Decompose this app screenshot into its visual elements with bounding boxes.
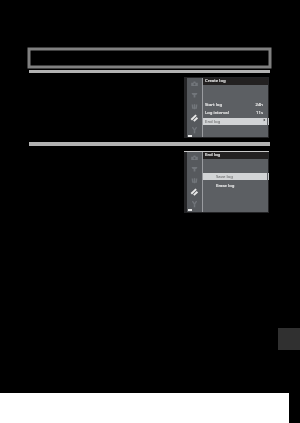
staticText: End log (205, 151, 221, 157)
button[interactable]: Menu categories (187, 78, 202, 137)
staticText: End log (205, 118, 221, 124)
staticText: Erase log (216, 182, 235, 188)
staticText: Save log (216, 173, 233, 179)
button[interactable]: Menu categories (187, 152, 202, 212)
staticText: 24h (223, 101, 263, 107)
button[interactable] (203, 118, 267, 125)
staticText: Create log (205, 77, 226, 83)
staticText: Start log (205, 101, 223, 107)
button[interactable] (203, 173, 267, 180)
staticText: 11s (229, 109, 263, 115)
staticText: Log interval (205, 109, 229, 115)
